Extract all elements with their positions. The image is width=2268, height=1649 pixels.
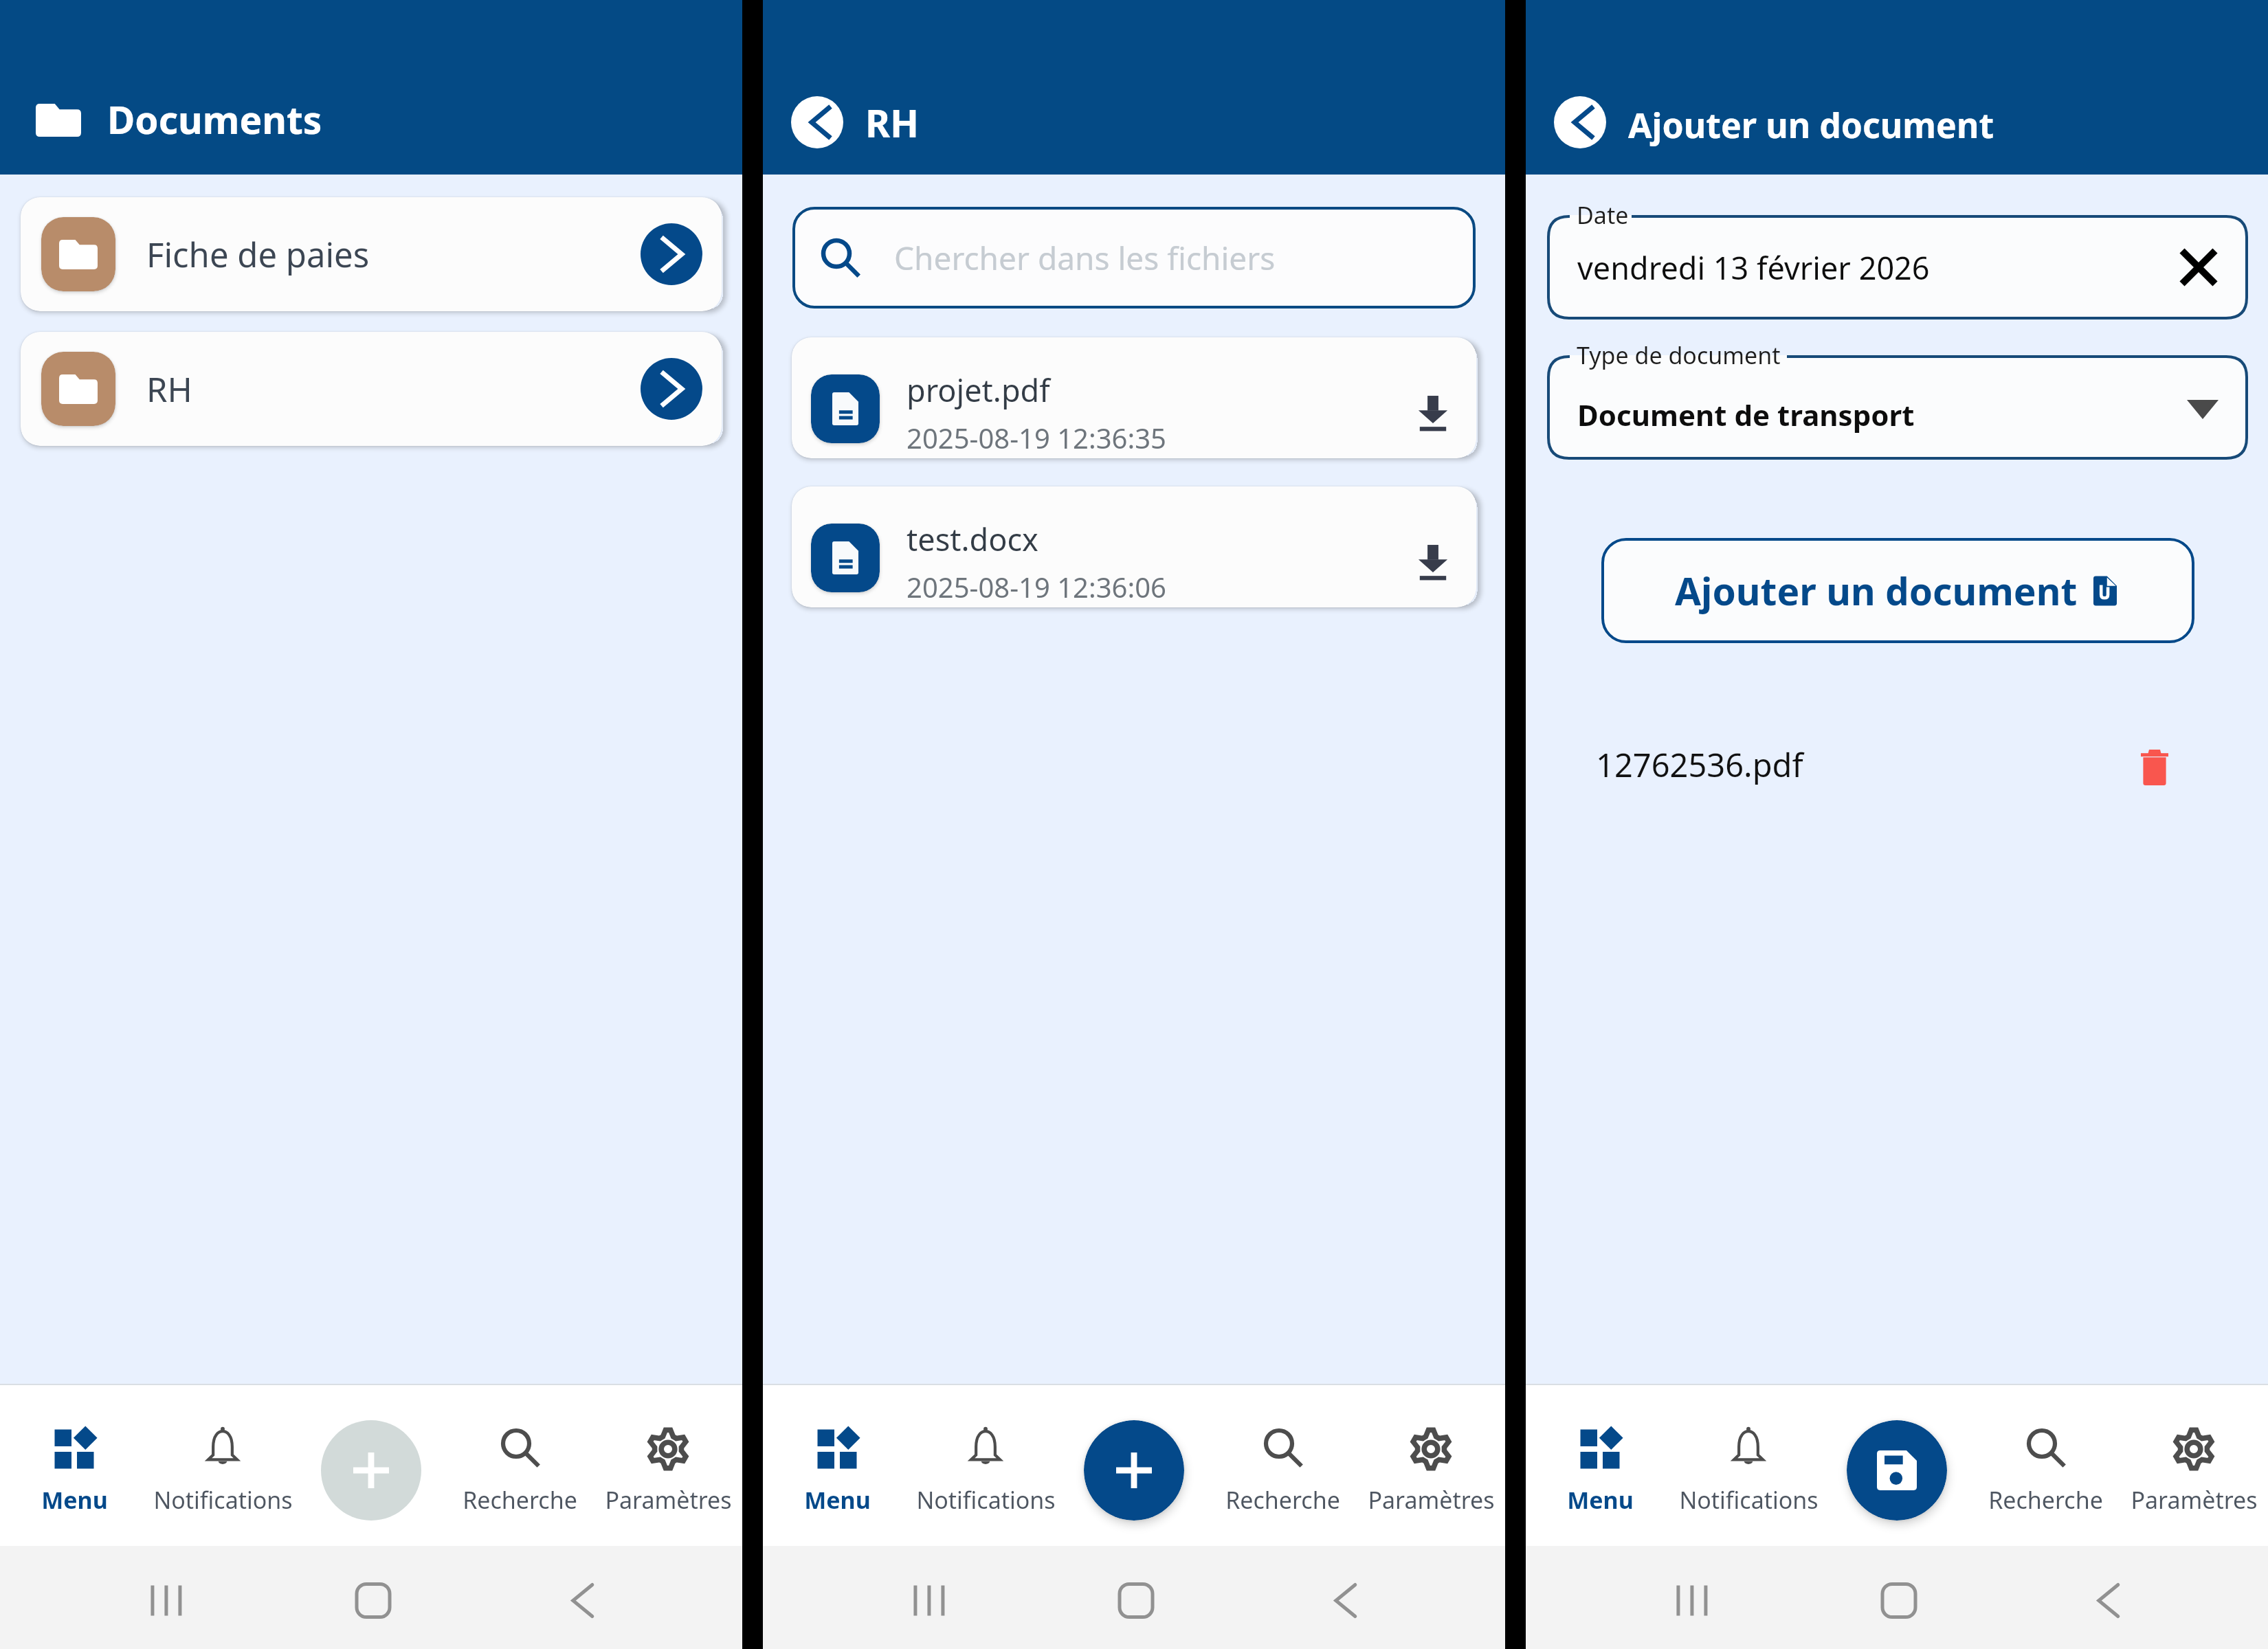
button[interactable]: Menu — [0, 1384, 148, 1546]
button[interactable]: RH — [21, 332, 722, 446]
button[interactable]: Notifications — [911, 1384, 1060, 1546]
staticText: Paramètres — [2131, 1484, 2258, 1516]
staticText: Menu — [1567, 1484, 1634, 1516]
button[interactable]: test.docx — [792, 486, 1476, 607]
button[interactable]: Ajouter — [321, 1420, 421, 1521]
staticText: vendredi 13 février 2026 — [1577, 247, 1930, 289]
button[interactable]: Enregistrer — [1847, 1420, 1947, 1521]
button[interactable]: Notifications — [1674, 1384, 1823, 1546]
button[interactable]: Fiche de paies — [21, 197, 722, 311]
button[interactable]: Menu — [1526, 1384, 1674, 1546]
button[interactable]: Notifications — [148, 1384, 297, 1546]
staticText: Documents — [107, 93, 322, 145]
button[interactable]: Télécharger projet.pdf — [1404, 384, 1462, 442]
staticText: Ajouter un document — [1675, 565, 2078, 616]
staticText: RH — [146, 366, 192, 412]
button[interactable]: Recherche — [445, 1384, 594, 1546]
staticText: Document de transport — [1577, 395, 1915, 434]
staticText: Recherche — [1225, 1484, 1340, 1516]
staticText: projet.pdf — [907, 369, 1050, 411]
staticText: Chercher dans les fichiers — [894, 236, 1276, 280]
button[interactable]: projet.pdf — [792, 337, 1476, 458]
staticText: Type de document — [1577, 339, 1781, 371]
button[interactable]: Retour — [791, 96, 843, 148]
staticText: Fiche de paies — [146, 232, 370, 278]
staticText: Recherche — [1988, 1484, 2103, 1516]
staticText: Notifications — [916, 1484, 1056, 1516]
button[interactable]: Paramètres — [594, 1384, 742, 1546]
staticText: RH — [865, 97, 920, 148]
button[interactable]: Ajouter un document — [1601, 538, 2194, 643]
button[interactable] — [1547, 215, 2248, 319]
button[interactable]: Menu — [763, 1384, 911, 1546]
button[interactable]: Chercher dans les fichiers — [792, 207, 1476, 309]
button[interactable]: Ouvrir Fiche de paies — [641, 223, 702, 285]
button[interactable]: Choisir un type — [2181, 385, 2225, 429]
button[interactable] — [1547, 355, 2248, 460]
staticText: 2025-08-19 12:36:06 — [907, 568, 1166, 605]
button[interactable]: Paramètres — [1357, 1384, 1505, 1546]
button[interactable]: Ouvrir RH — [641, 358, 702, 420]
button[interactable]: Recherche — [1971, 1384, 2120, 1546]
staticText: Paramètres — [1368, 1484, 1495, 1516]
button[interactable]: Paramètres — [2120, 1384, 2268, 1546]
button[interactable]: Supprimer — [2127, 737, 2182, 792]
staticText: Paramètres — [605, 1484, 732, 1516]
staticText: 12762536.pdf — [1596, 743, 1803, 787]
button[interactable]: Effacer la date — [2172, 241, 2225, 293]
button[interactable]: Recherche — [1208, 1384, 1357, 1546]
button[interactable]: Ajouter — [1084, 1420, 1184, 1521]
staticText: Notifications — [153, 1484, 293, 1516]
staticText: Ajouter un document — [1628, 102, 1994, 148]
button[interactable]: Télécharger test.docx — [1404, 533, 1462, 591]
staticText: Menu — [804, 1484, 871, 1516]
staticText: test.docx — [907, 518, 1038, 560]
staticText: Date — [1577, 199, 1629, 231]
staticText: 2025-08-19 12:36:35 — [907, 419, 1166, 456]
staticText: Notifications — [1679, 1484, 1819, 1516]
staticText: Recherche — [463, 1484, 577, 1516]
staticText: Menu — [41, 1484, 108, 1516]
button[interactable]: Retour — [1554, 96, 1606, 148]
